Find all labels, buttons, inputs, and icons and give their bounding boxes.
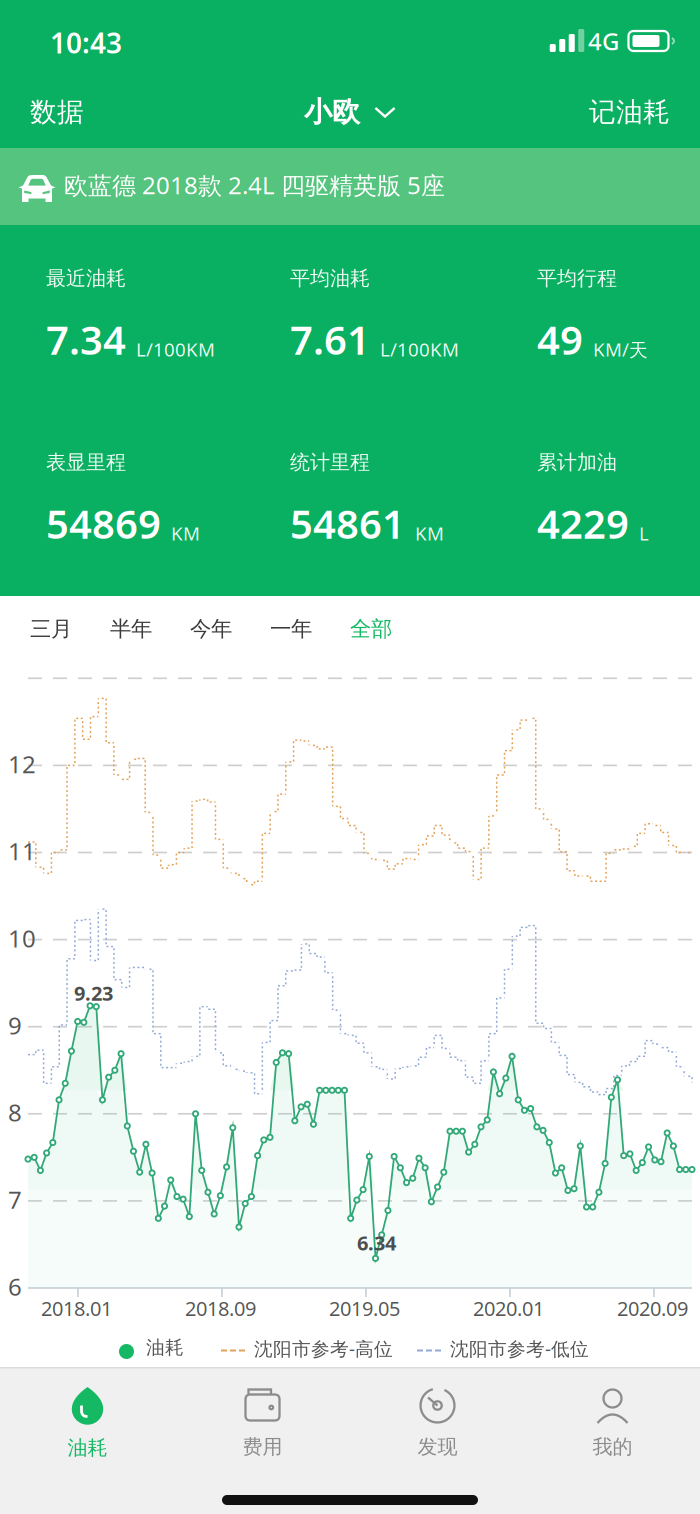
staticText: 8 bbox=[8, 1096, 22, 1128]
button[interactable]: 费用 bbox=[175, 1368, 350, 1472]
staticText: 欧蓝德 2018款 2.4L 四驱精英版 5座 bbox=[64, 169, 445, 201]
button[interactable]: 油耗 bbox=[0, 1368, 175, 1472]
staticText: 数据 bbox=[30, 96, 84, 128]
staticText: 费用 bbox=[242, 1434, 282, 1459]
staticText: KM/天 bbox=[593, 337, 648, 362]
staticText: 今年 bbox=[190, 616, 232, 642]
staticText: KM bbox=[415, 521, 444, 546]
staticText: 54861 bbox=[290, 497, 405, 550]
staticText: 油耗 bbox=[67, 1435, 107, 1460]
staticText: 沈阳市参考-高位 bbox=[254, 1336, 393, 1361]
staticText: 记油耗 bbox=[589, 96, 670, 128]
button[interactable]: 我的 bbox=[525, 1368, 700, 1472]
staticText: 2020.01 bbox=[473, 1295, 544, 1322]
staticText: 全部 bbox=[350, 616, 392, 642]
staticText: 发现 bbox=[417, 1434, 457, 1459]
staticText: 油耗 bbox=[146, 1336, 184, 1359]
staticText: 11 bbox=[8, 835, 36, 867]
staticText: 54869 bbox=[46, 497, 161, 550]
staticText: 9.23 bbox=[74, 980, 113, 1006]
staticText: 2018.01 bbox=[41, 1295, 112, 1322]
staticText: 一年 bbox=[270, 616, 312, 642]
button[interactable]: 发现 bbox=[350, 1368, 525, 1472]
staticText: 7.61 bbox=[290, 313, 370, 366]
staticText: L/100KM bbox=[136, 337, 215, 362]
staticText: 2020.09 bbox=[617, 1295, 688, 1322]
staticText: 平均油耗 bbox=[290, 266, 370, 291]
button[interactable]: 小欧 bbox=[304, 76, 396, 148]
staticText: 表显里程 bbox=[46, 450, 126, 475]
staticText: 2019.05 bbox=[329, 1295, 400, 1322]
staticText: 累计加油 bbox=[537, 450, 617, 475]
staticText: 9 bbox=[8, 1009, 22, 1041]
staticText: 我的 bbox=[592, 1434, 632, 1459]
staticText: 12 bbox=[8, 748, 36, 780]
staticText: 平均行程 bbox=[537, 266, 617, 291]
staticText: 4229 bbox=[537, 497, 629, 550]
staticText: 小欧 bbox=[304, 95, 360, 129]
button[interactable]: 记油耗 bbox=[563, 76, 700, 148]
staticText: 2018.09 bbox=[185, 1295, 256, 1322]
staticText: 7 bbox=[8, 1183, 22, 1215]
staticText: 6.34 bbox=[357, 1229, 396, 1256]
button[interactable]: 一年 bbox=[251, 596, 331, 662]
button[interactable]: 今年 bbox=[171, 596, 251, 662]
staticText: 三月 bbox=[30, 616, 72, 642]
staticText: 最近油耗 bbox=[46, 266, 126, 291]
staticText: KM bbox=[171, 521, 200, 546]
button[interactable]: 欧蓝德 2018款 2.4L 四驱精英版 5座 bbox=[0, 148, 700, 225]
staticText: L bbox=[639, 521, 649, 546]
staticText: 7.34 bbox=[46, 313, 126, 366]
button[interactable]: 三月 bbox=[11, 596, 91, 662]
staticText: 半年 bbox=[110, 616, 152, 642]
staticText: 6 bbox=[8, 1271, 22, 1302]
button[interactable]: 全部 bbox=[331, 596, 411, 662]
staticText: 4G bbox=[588, 25, 619, 57]
staticText: 沈阳市参考-低位 bbox=[450, 1336, 589, 1361]
staticText: 10 bbox=[8, 922, 36, 954]
staticText: L/100KM bbox=[380, 337, 459, 362]
staticText: 49 bbox=[537, 313, 583, 366]
button[interactable]: 半年 bbox=[91, 596, 171, 662]
staticText: 10:43 bbox=[50, 24, 122, 61]
button[interactable]: 数据 bbox=[0, 76, 110, 148]
staticText: 统计里程 bbox=[290, 450, 370, 475]
